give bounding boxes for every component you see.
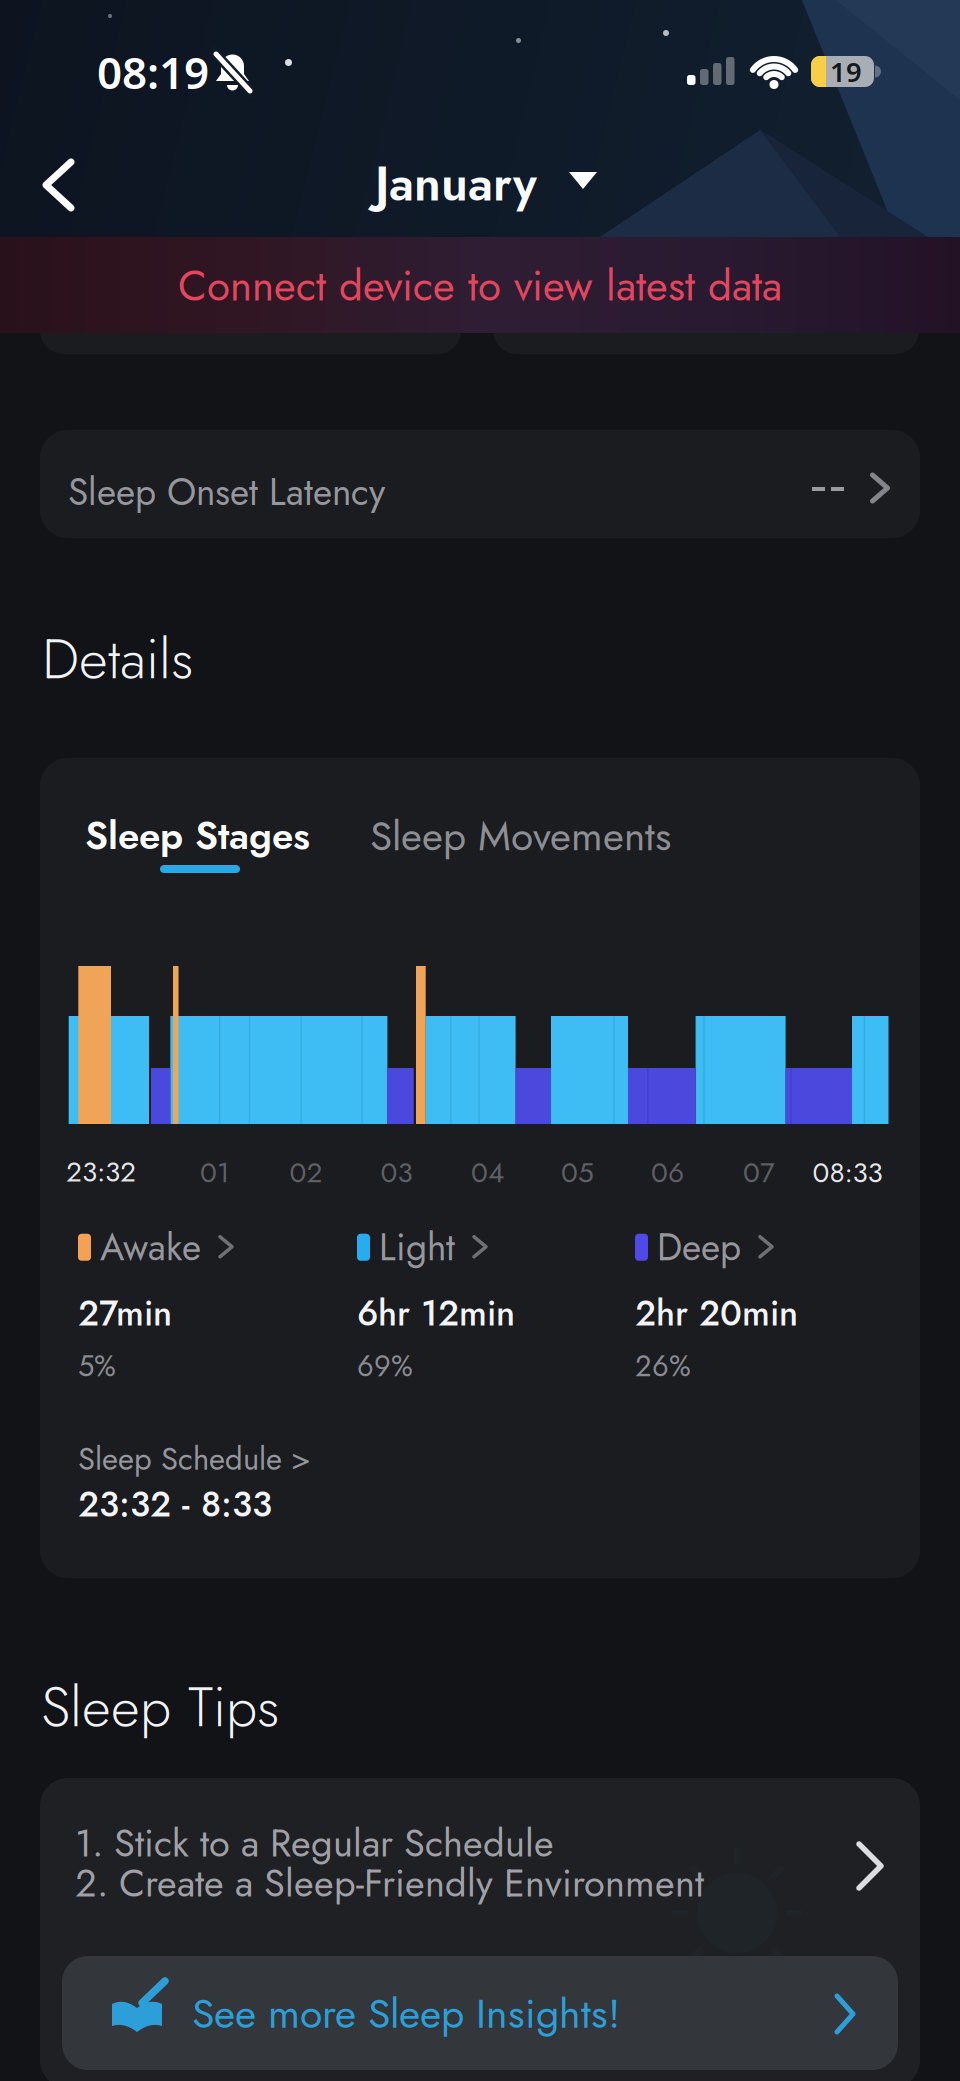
staticText: Deep xyxy=(657,1221,741,1274)
button[interactable]: Sleep Onset Latency xyxy=(40,430,920,538)
staticText: 02 xyxy=(289,1152,322,1193)
staticText: 08:19 xyxy=(97,42,209,102)
button[interactable]: Connect device to view latest data xyxy=(0,237,960,333)
staticText: 04 xyxy=(471,1152,504,1193)
staticText: 03 xyxy=(380,1152,412,1193)
staticText: 23:32 xyxy=(66,1152,136,1192)
staticText: 5% xyxy=(78,1345,116,1387)
button[interactable]: Light xyxy=(357,1247,495,1274)
staticText: Light xyxy=(379,1221,455,1274)
staticText: January xyxy=(375,149,537,219)
staticText: Sleep Onset Latency xyxy=(68,465,385,519)
staticText: 07 xyxy=(743,1152,775,1193)
staticText: 19 xyxy=(830,53,862,90)
button[interactable]: Sleep Stages xyxy=(85,822,365,878)
button[interactable]: Sleep Schedule > xyxy=(74,1437,344,1481)
staticText: 27min xyxy=(78,1288,172,1339)
button[interactable]: 1. Stick to a Regular Schedule xyxy=(40,1778,920,1956)
staticText: Sleep Schedule > xyxy=(78,1436,311,1481)
button[interactable]: Sleep Movements xyxy=(370,822,700,868)
staticText: Details xyxy=(42,618,194,699)
staticText: 6hr 12min xyxy=(357,1288,515,1339)
button[interactable]: Back xyxy=(28,145,92,229)
staticText: 08:33 xyxy=(812,1152,882,1193)
staticText: Sleep Stages xyxy=(85,808,310,863)
staticText: Sleep Movements xyxy=(370,807,671,865)
staticText: 05 xyxy=(561,1152,594,1193)
staticText: 26% xyxy=(635,1345,691,1387)
staticText: 06 xyxy=(651,1152,684,1193)
staticText: Sleep Tips xyxy=(41,1666,280,1747)
button[interactable]: Awake xyxy=(78,1247,241,1274)
staticText: 1. Stick to a Regular Schedule xyxy=(75,1816,554,1871)
staticText: 2hr 20min xyxy=(635,1288,798,1339)
staticText: 2. Create a Sleep-Friendly Environment xyxy=(75,1856,704,1911)
button[interactable]: Deep xyxy=(635,1247,781,1274)
staticText: See more Sleep Insights! xyxy=(192,1984,620,2043)
staticText: 69% xyxy=(357,1345,413,1387)
button[interactable]: See more Sleep Insights! xyxy=(62,1956,898,2070)
staticText: 23:32 - 8:33 xyxy=(78,1479,272,1530)
staticText: Connect device to view latest data xyxy=(178,256,782,316)
button[interactable]: Select month xyxy=(336,144,600,226)
staticText: Awake xyxy=(100,1221,201,1274)
staticText: 01 xyxy=(200,1152,230,1193)
